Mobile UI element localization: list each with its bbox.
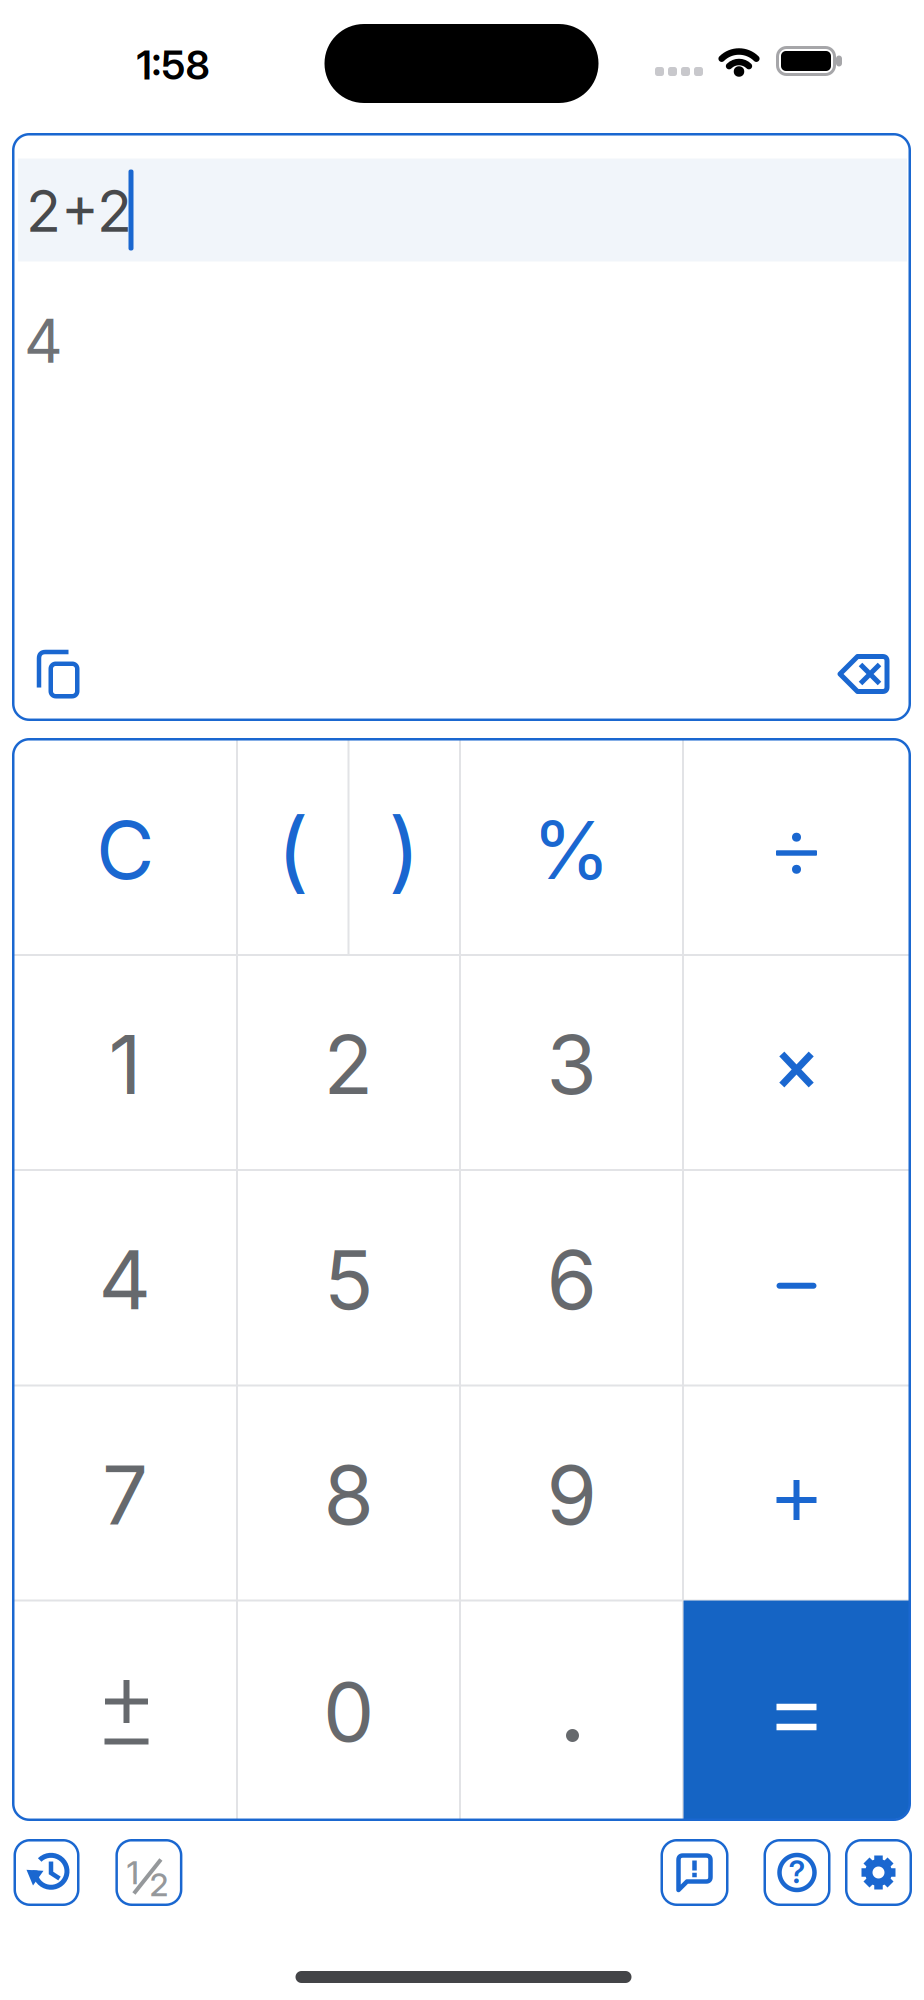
button[interactable]: Divide — [685, 740, 907, 954]
staticText: ) — [388, 798, 420, 902]
button[interactable]: 4 — [14, 1171, 236, 1385]
button[interactable]: 3 — [460, 955, 682, 1169]
button[interactable]: Plus minus — [14, 1603, 236, 1817]
button[interactable]: Close parenthesis — [349, 740, 459, 954]
button[interactable]: Clear — [14, 740, 236, 954]
button[interactable]: Plus — [685, 1386, 907, 1600]
button[interactable]: Send feedback — [660, 1839, 728, 1906]
staticText: 1 — [126, 1854, 139, 1891]
button[interactable]: 5 — [237, 1171, 459, 1385]
staticText: 4 — [98, 1232, 151, 1328]
button[interactable]: 9 — [460, 1386, 682, 1600]
button[interactable]: 6 — [460, 1171, 682, 1385]
staticText: 1 — [108, 1016, 141, 1112]
button[interactable]: Percent — [460, 740, 682, 954]
button[interactable]: Copy — [36, 649, 80, 699]
button[interactable]: 1 — [14, 955, 236, 1169]
button[interactable]: Decimal point — [460, 1603, 682, 1817]
staticText: ? — [788, 1854, 805, 1890]
button[interactable]: Help — [763, 1839, 830, 1906]
button[interactable]: Backspace — [837, 654, 889, 694]
button[interactable]: Multiply — [685, 955, 907, 1169]
button[interactable]: 8 — [237, 1386, 459, 1600]
staticText: 1:58 — [136, 41, 209, 89]
button[interactable]: 7 — [14, 1386, 236, 1600]
staticText: 8 — [323, 1447, 373, 1543]
staticText: 7 — [102, 1447, 148, 1543]
staticText: % — [532, 803, 611, 897]
staticText: ( — [277, 798, 309, 902]
staticText: 6 — [546, 1232, 596, 1328]
staticText: 0 — [323, 1664, 374, 1760]
staticText: 4 — [24, 306, 63, 376]
button[interactable]: Fractions — [115, 1839, 182, 1906]
staticText: 2 — [149, 1866, 168, 1903]
staticText: 2+2 — [26, 177, 132, 245]
button[interactable]: Open parenthesis — [238, 740, 348, 954]
staticText: 9 — [546, 1447, 596, 1543]
button[interactable]: 0 — [237, 1603, 459, 1817]
button[interactable]: History — [13, 1839, 79, 1906]
button[interactable]: 2 — [237, 955, 459, 1169]
button[interactable]: Equals — [683, 1601, 909, 1819]
staticText: C — [96, 803, 154, 897]
staticText: 3 — [546, 1016, 596, 1112]
button[interactable]: Minus — [685, 1171, 907, 1385]
staticText: 2 — [323, 1016, 373, 1112]
button[interactable]: Settings — [845, 1839, 912, 1906]
staticText: 5 — [324, 1232, 373, 1328]
